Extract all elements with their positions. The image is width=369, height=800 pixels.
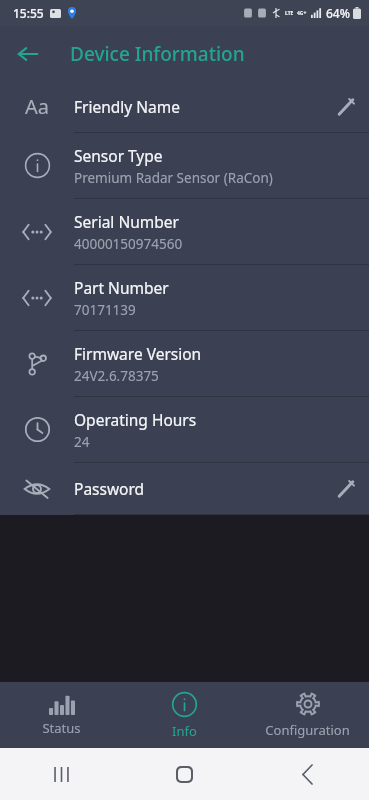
staticText: 70171139 bbox=[74, 301, 136, 319]
button[interactable]: Recent apps bbox=[0, 748, 123, 800]
staticText: Part Number bbox=[74, 277, 169, 298]
staticText: Status bbox=[42, 719, 81, 737]
staticText: 64% bbox=[326, 5, 350, 21]
button[interactable]: Configuration bbox=[246, 682, 369, 748]
staticText: Firmware Version bbox=[74, 343, 202, 364]
staticText: 24V2.6.78375 bbox=[74, 367, 159, 385]
staticText: 15:55 bbox=[13, 5, 44, 21]
button[interactable]: Info bbox=[123, 682, 246, 748]
staticText: Password bbox=[74, 478, 145, 499]
button[interactable]: Password bbox=[0, 463, 369, 514]
button[interactable]: Back bbox=[246, 748, 369, 800]
button[interactable]: Operating Hours bbox=[0, 397, 369, 462]
button[interactable]: Part Number bbox=[0, 265, 369, 330]
button[interactable]: Sensor Type bbox=[0, 133, 369, 198]
button[interactable]: Aa bbox=[0, 81, 369, 132]
staticText: Operating Hours bbox=[74, 409, 197, 430]
staticText: 40000150974560 bbox=[74, 235, 183, 253]
button[interactable]: Serial Number bbox=[0, 199, 369, 264]
button[interactable]: Firmware Version bbox=[0, 331, 369, 396]
staticText: Info bbox=[172, 722, 197, 740]
button[interactable]: Home bbox=[123, 748, 246, 800]
staticText: LTE bbox=[285, 10, 294, 17]
staticText: Aa bbox=[25, 93, 49, 120]
button[interactable]: Status bbox=[0, 682, 123, 748]
staticText: Configuration bbox=[265, 721, 350, 739]
button[interactable]: Edit Friendly Name bbox=[323, 84, 369, 130]
button[interactable]: Back bbox=[10, 36, 46, 72]
staticText: 24 bbox=[74, 433, 90, 451]
staticText: Premium Radar Sensor (RaCon) bbox=[74, 169, 273, 187]
staticText: Serial Number bbox=[74, 211, 179, 232]
staticText: Friendly Name bbox=[74, 96, 180, 117]
staticText: 4G+ bbox=[297, 10, 307, 17]
staticText: Device Information bbox=[70, 41, 245, 67]
staticText: Sensor Type bbox=[74, 145, 163, 166]
button[interactable]: Edit Password bbox=[323, 466, 369, 512]
